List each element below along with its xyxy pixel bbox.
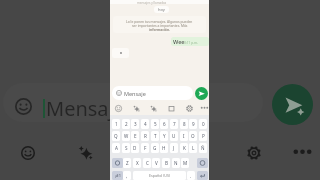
staticText: J (173, 145, 175, 151)
staticText: 7 (173, 121, 176, 127)
staticText: F (144, 145, 147, 151)
staticText: 8 (183, 121, 186, 127)
button[interactable]: , (123, 171, 131, 180)
button[interactable]: C (143, 158, 151, 168)
button[interactable]: 3 (131, 119, 139, 129)
staticText: E (134, 133, 137, 139)
staticText: 2 (125, 121, 128, 127)
button[interactable]: Q (112, 131, 120, 141)
button[interactable]: X (133, 158, 141, 168)
button[interactable]: More options (294, 145, 311, 162)
button[interactable]: Emoji (15, 98, 32, 115)
button[interactable]: Send (272, 84, 313, 125)
button[interactable]: K (180, 143, 188, 153)
staticText: hoy (158, 7, 165, 12)
button[interactable]: 1 (112, 119, 120, 129)
button[interactable]: U (170, 131, 178, 141)
staticText: Español (US) (149, 173, 170, 178)
button[interactable]: T (151, 131, 159, 141)
button[interactable]: H (160, 143, 168, 153)
staticText: 3:11 p.m. (184, 41, 198, 45)
staticText: Mensaje (46, 95, 126, 122)
staticText: Q (114, 133, 118, 139)
button[interactable]: ¡#1 (112, 171, 123, 180)
staticText: Mensaje (124, 90, 146, 97)
button[interactable]: M (181, 158, 189, 168)
button[interactable]: Enter (197, 171, 208, 180)
button[interactable]: 6 (160, 119, 168, 129)
staticText: B (165, 160, 168, 166)
button[interactable]: B (162, 158, 170, 168)
button[interactable]: Emoji (21, 146, 35, 160)
button[interactable]: Send message (195, 87, 208, 100)
staticText: M (183, 160, 188, 166)
button[interactable]: S (122, 143, 130, 153)
staticText: X (136, 160, 139, 166)
button[interactable]: A (112, 143, 120, 153)
button[interactable]: Backspace (197, 158, 208, 168)
staticText: 5 (154, 121, 157, 127)
staticText: S (125, 145, 128, 151)
button[interactable]: Shift (112, 158, 123, 168)
button[interactable]: E (131, 131, 139, 141)
button[interactable]: Ñ (199, 143, 207, 153)
staticText: U (172, 133, 176, 139)
staticText: L (192, 145, 195, 151)
button[interactable]: Z (123, 158, 131, 168)
button[interactable]: P (199, 131, 207, 141)
button[interactable]: . (187, 171, 195, 180)
button[interactable]: G (151, 143, 159, 153)
staticText: Ñ (201, 145, 205, 151)
button[interactable]: tool1 (133, 105, 140, 112)
button[interactable]: 0 (199, 119, 207, 129)
staticText: 1 (115, 121, 118, 127)
button[interactable]: 9 (189, 119, 197, 129)
button[interactable]: D (131, 143, 139, 153)
staticText: 6 (163, 121, 166, 127)
button[interactable]: tool2 (150, 105, 157, 112)
button[interactable]: Y (160, 131, 168, 141)
button[interactable]: 8 (180, 119, 188, 129)
staticText: D (133, 145, 137, 151)
staticText: ser importantes a importantes. Más (132, 23, 188, 27)
button[interactable]: O (189, 131, 197, 141)
button[interactable]: 7 (170, 119, 178, 129)
staticText: ¡#1 (115, 173, 121, 178)
staticText: C (146, 160, 149, 166)
button[interactable]: Español (US) (133, 171, 186, 180)
staticText: W (124, 133, 129, 139)
button[interactable]: Mensaje (112, 86, 193, 100)
button[interactable]: tool4 (186, 105, 193, 112)
button[interactable]: 5 (151, 119, 159, 129)
button[interactable]: 2 (122, 119, 130, 129)
staticText: Z (126, 160, 129, 166)
button[interactable]: tool5 (201, 105, 208, 112)
button[interactable]: Settings (247, 146, 261, 160)
staticText: 9 (192, 121, 195, 127)
staticText: V (155, 160, 158, 166)
staticText: N (174, 160, 178, 166)
button[interactable]: 4 (141, 119, 149, 129)
staticText: K (183, 145, 186, 151)
staticText: 0 (202, 121, 205, 127)
staticText: , (126, 173, 128, 179)
button[interactable]: L (189, 143, 197, 153)
button[interactable]: Assistant (78, 145, 93, 160)
staticText: P (202, 133, 205, 139)
staticText: R (144, 133, 147, 139)
staticText: 3 (134, 121, 137, 127)
button[interactable]: W (122, 131, 130, 141)
button[interactable] (3, 83, 263, 122)
button[interactable]: V (152, 158, 160, 168)
button[interactable]: I (180, 131, 188, 141)
staticText: . (190, 173, 192, 179)
button[interactable]: F (141, 143, 149, 153)
button[interactable]: R (141, 131, 149, 141)
button[interactable]: tool0 (115, 105, 122, 112)
button[interactable]: J (170, 143, 178, 153)
staticText: H (162, 145, 166, 151)
staticText: G (153, 145, 157, 151)
button[interactable]: N (172, 158, 180, 168)
staticText: Wee (173, 38, 185, 46)
button[interactable]: tool3 (168, 105, 175, 112)
